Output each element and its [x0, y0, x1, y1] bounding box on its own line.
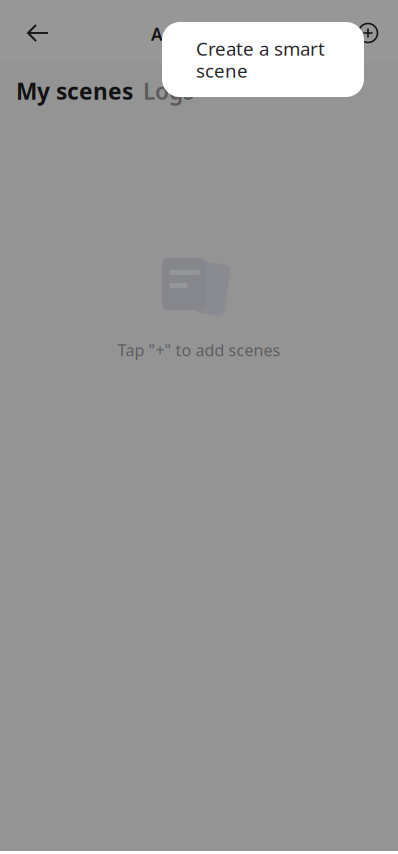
button[interactable]: Back — [16, 11, 60, 55]
button[interactable]: Add scene — [346, 11, 390, 55]
staticText: Create a smart — [196, 36, 325, 61]
staticText: Logs — [143, 76, 194, 106]
staticText: scene — [196, 58, 248, 83]
button[interactable]: My scenes — [16, 78, 133, 104]
staticText: Tap "+" to add scenes — [117, 339, 280, 361]
button[interactable]: Logs — [143, 78, 194, 104]
staticText: My scenes — [16, 76, 133, 106]
staticText: Automation — [151, 22, 253, 45]
